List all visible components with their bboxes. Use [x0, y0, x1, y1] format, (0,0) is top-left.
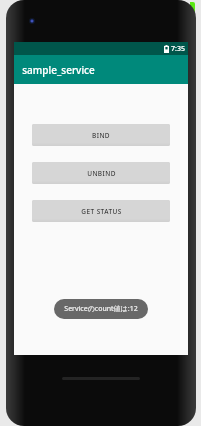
staticText: UNBIND [87, 169, 116, 178]
staticText: sample_service [22, 63, 95, 77]
staticText: Serviceのcount値は:12 [64, 304, 138, 314]
button[interactable]: UNBIND [32, 162, 170, 184]
staticText: GET STATUS [81, 207, 122, 216]
staticText: BIND [92, 131, 110, 140]
other: Power button [190, 2, 195, 24]
button[interactable]: GET STATUS [32, 200, 170, 222]
button[interactable]: BIND [32, 124, 170, 146]
staticText: 7:35 [171, 44, 185, 54]
